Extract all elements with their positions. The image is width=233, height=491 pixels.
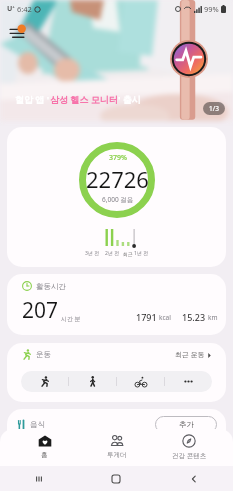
staticText: 최근 운동 xyxy=(175,350,205,360)
button[interactable]: 건강 콘텐츠 xyxy=(153,429,225,466)
button[interactable]: 활동시간 xyxy=(7,274,226,335)
staticText: 6:42 xyxy=(17,4,32,14)
staticText: 2년 전 xyxy=(105,250,120,257)
staticText: 207 xyxy=(22,296,59,325)
button[interactable]: 379% xyxy=(7,127,226,267)
staticText: 혈압 앱 ' xyxy=(15,93,50,105)
staticText: 홈 xyxy=(41,451,48,459)
staticText: 건강 콘텐츠 xyxy=(172,451,207,460)
staticText: 운동 xyxy=(36,350,51,359)
staticText: 활동시간 xyxy=(36,282,66,291)
staticText: 투게더 xyxy=(107,451,127,459)
staticText: 최근 xyxy=(123,251,133,257)
button[interactable]: Running xyxy=(21,371,68,392)
staticText: 음식 xyxy=(30,420,45,429)
staticText: 시간 분 xyxy=(61,315,81,323)
button[interactable]: 추가 xyxy=(155,416,217,433)
button[interactable]: Back xyxy=(155,466,233,491)
staticText: 1/3 xyxy=(209,104,219,113)
staticText: 6,000 걸음 xyxy=(102,195,134,204)
button[interactable]: 운동 xyxy=(7,343,226,402)
button[interactable]: Home xyxy=(77,466,155,491)
staticText: ' 출시 xyxy=(118,93,141,105)
button[interactable]: Walking xyxy=(69,371,116,392)
staticText: 1년 전 xyxy=(134,250,149,257)
staticText: U⁺ xyxy=(7,4,15,14)
button[interactable]: 음식 xyxy=(7,409,226,449)
button[interactable]: 투게더 xyxy=(81,429,153,466)
staticText: 22726 xyxy=(86,164,149,194)
button[interactable]: 최근 운동 xyxy=(175,350,212,360)
staticText: 99% xyxy=(204,4,219,14)
staticText: 3년 전 xyxy=(85,250,100,257)
staticText: 1791 xyxy=(136,311,157,323)
button[interactable]: More xyxy=(165,371,212,392)
staticText: 379% xyxy=(109,153,127,163)
button[interactable]: Recents xyxy=(0,466,77,491)
staticText: 삼성 헬스 모니터 xyxy=(50,93,118,105)
staticText: 15.23 xyxy=(182,311,206,323)
staticText: km xyxy=(208,313,218,322)
button[interactable]: Cycling xyxy=(117,371,164,392)
staticText: 추가 xyxy=(179,420,194,429)
staticText: kcal xyxy=(159,313,171,322)
button[interactable]: 홈 xyxy=(8,429,81,466)
button[interactable]: Menu xyxy=(6,22,28,44)
